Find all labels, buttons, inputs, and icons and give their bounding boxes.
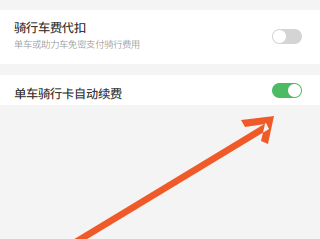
button[interactable]: 骑行车费代扣 (0, 10, 320, 64)
staticText: 骑行车费代扣 (14, 18, 86, 36)
button[interactable]: 单车骑行卡自动续费 (0, 75, 320, 105)
staticText: 单车或助力车免密支付骑行费用 (14, 37, 140, 50)
staticText: 单车骑行卡自动续费 (14, 84, 122, 102)
